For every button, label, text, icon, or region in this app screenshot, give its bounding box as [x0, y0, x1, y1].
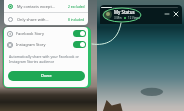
staticText: 12 Views [128, 16, 140, 20]
button[interactable]: My contacts except... [4, 0, 88, 12]
staticText: My contacts except... [17, 4, 68, 9]
staticText: Facebook Story [16, 31, 73, 36]
button[interactable]: Toggle Facebook Story [73, 30, 86, 37]
staticText: 8 included [68, 17, 85, 21]
button[interactable]: Close [172, 10, 180, 18]
button[interactable]: Only share with... [4, 13, 88, 25]
button[interactable]: Minimize [163, 10, 171, 18]
staticText: My Status [114, 9, 135, 15]
staticText: Only share with... [17, 17, 68, 22]
staticText: 3 Min [114, 16, 122, 20]
staticText: Instagram Story [16, 42, 73, 47]
staticText: Automatically share with your Facebook o… [9, 54, 79, 59]
button[interactable]: Facebook Story [4, 28, 89, 39]
button[interactable]: Toggle Instagram Story [73, 41, 86, 48]
staticText: Done [41, 73, 52, 79]
button[interactable]: Instagram Story [4, 39, 89, 50]
staticText: 2 excluded [68, 4, 85, 8]
button[interactable]: Done [8, 71, 85, 81]
staticText: Instagram Stories audience [9, 59, 55, 64]
